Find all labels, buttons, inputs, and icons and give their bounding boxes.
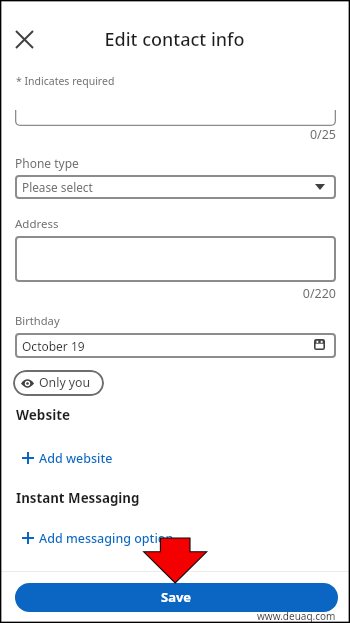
staticText: Phone type <box>15 155 79 171</box>
staticText: Please select <box>22 179 93 195</box>
staticText: Address <box>15 216 59 232</box>
staticText: Add messaging option <box>39 530 174 547</box>
staticText: www.deuaq.com <box>257 609 336 623</box>
button[interactable]: October 19 <box>15 333 336 358</box>
staticText: 0/220 <box>276 285 336 302</box>
button[interactable]: Only you <box>13 370 104 396</box>
button[interactable] <box>15 236 336 282</box>
staticText: October 19 <box>22 338 85 354</box>
button[interactable]: Save <box>15 583 338 612</box>
staticText: Instant Messaging <box>16 489 140 507</box>
staticText: Save <box>161 588 192 606</box>
button[interactable]: Please select <box>15 175 336 199</box>
staticText: 0/25 <box>276 126 336 143</box>
button[interactable]: Close <box>5 20 43 58</box>
staticText: Add website <box>39 450 113 467</box>
button[interactable]: Add website <box>0 448 350 468</box>
staticText: Birthday <box>15 313 60 328</box>
button[interactable]: Add messaging option <box>0 528 350 548</box>
staticText: Edit contact info <box>0 27 349 52</box>
staticText: Only you <box>39 374 91 391</box>
staticText: Website <box>16 406 71 424</box>
staticText: * Indicates required <box>16 74 115 88</box>
